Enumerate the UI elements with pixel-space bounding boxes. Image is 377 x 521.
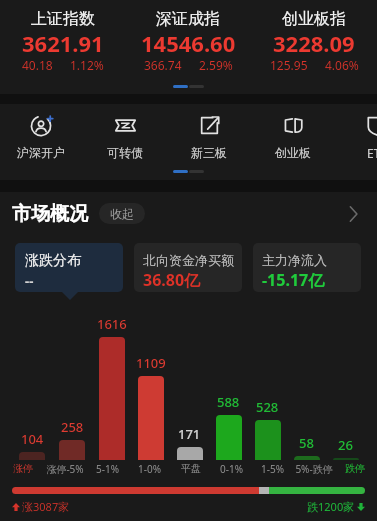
button[interactable]: 1109	[131, 300, 170, 460]
staticText: 528	[256, 398, 279, 416]
staticText: 平盘	[181, 462, 201, 475]
button[interactable]: 创业板	[251, 104, 335, 160]
staticText: 0-1%	[220, 462, 243, 476]
staticText: 366.74	[144, 57, 182, 73]
staticText: 沪深开户	[17, 145, 65, 160]
staticText: 上证指数	[31, 9, 95, 29]
staticText: 14546.60	[141, 28, 236, 58]
staticText: 深证成指	[156, 9, 220, 29]
button[interactable]: 涨跌分布	[15, 243, 123, 292]
button[interactable]: 北向资金净买额	[134, 243, 242, 292]
button[interactable]: 528	[248, 300, 287, 460]
staticText: 3621.91	[22, 28, 104, 58]
staticText: 主力净流入	[262, 252, 327, 268]
button[interactable]: 沪深开户	[0, 104, 83, 160]
staticText: 市场概况	[12, 202, 88, 226]
staticText: 1616	[97, 315, 127, 333]
staticText: 收起	[110, 206, 134, 221]
staticText: 创业板	[275, 145, 311, 160]
button[interactable]: 26	[326, 300, 365, 460]
staticText: 36.80亿	[143, 269, 201, 291]
button[interactable]: 58	[287, 300, 326, 460]
staticText: 可转债	[107, 145, 143, 160]
staticText: 2.59%	[199, 57, 233, 73]
staticText: 1.12%	[70, 57, 104, 73]
staticText: 新三板	[191, 145, 227, 160]
button[interactable]: 588	[209, 300, 248, 460]
staticText: 1-0%	[138, 462, 161, 476]
staticText: --	[25, 272, 34, 290]
button[interactable]: 258	[52, 300, 92, 460]
button[interactable]: 171	[170, 300, 209, 460]
staticText: -15.17亿	[262, 269, 325, 291]
staticText: 171	[178, 425, 201, 443]
button[interactable]: 可转债	[83, 104, 167, 160]
staticText: 3228.09	[273, 28, 355, 58]
staticText: 5-1%	[96, 462, 119, 476]
button[interactable]: 主力净流入	[253, 243, 361, 292]
button[interactable]: 查看更多	[341, 202, 365, 226]
staticText: 1109	[136, 354, 166, 372]
button[interactable]: 1616	[92, 300, 131, 460]
staticText: 涨停	[13, 462, 33, 475]
staticText: 4.06%	[325, 57, 359, 73]
staticText: 258	[61, 418, 84, 436]
staticText: 40.18	[22, 57, 53, 73]
staticText: 创业板指	[282, 9, 346, 29]
staticText: 104	[21, 430, 44, 448]
staticText: 涨3087家	[22, 499, 70, 514]
staticText: 涨跌分布	[25, 252, 81, 270]
staticText: 北向资金净买额	[143, 252, 234, 268]
staticText: 涨停-5%	[46, 462, 84, 476]
button[interactable]: 创业板指	[251, 0, 377, 94]
staticText: 跌停	[345, 462, 365, 475]
staticText: 26	[338, 436, 353, 454]
staticText: 1-5%	[261, 462, 284, 476]
button[interactable]: 深证成指	[125, 0, 251, 94]
staticText: 588	[217, 393, 240, 411]
staticText: 58	[299, 434, 314, 452]
staticText: 跌1200家	[307, 499, 355, 514]
button[interactable]: 新三板	[167, 104, 251, 160]
button[interactable]: ETF	[335, 104, 377, 161]
staticText: 125.95	[270, 57, 308, 73]
staticText: ETF	[367, 145, 377, 161]
button[interactable]: 104	[12, 300, 52, 460]
button[interactable]: 收起	[99, 203, 145, 224]
button[interactable]: 上证指数	[0, 0, 125, 94]
staticText: 5%-跌停	[295, 462, 333, 476]
